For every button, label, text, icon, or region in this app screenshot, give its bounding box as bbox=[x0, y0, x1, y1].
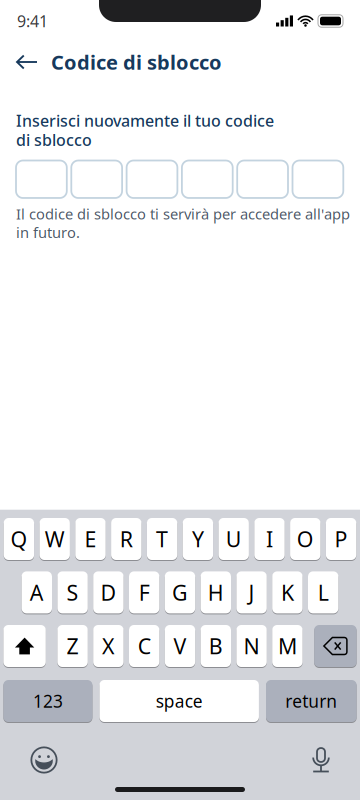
staticText: X bbox=[102, 632, 115, 660]
staticText: W bbox=[45, 525, 65, 553]
staticText: Q bbox=[10, 525, 27, 553]
button[interactable]: B bbox=[201, 625, 231, 668]
staticText: L bbox=[318, 578, 329, 606]
staticText: U bbox=[226, 525, 242, 553]
staticText: 123 bbox=[33, 689, 63, 712]
button[interactable]: return bbox=[266, 680, 357, 723]
button[interactable]: A bbox=[22, 571, 52, 614]
button[interactable]: J bbox=[236, 571, 267, 614]
staticText: C bbox=[138, 632, 151, 660]
button[interactable]: Emoji bbox=[22, 738, 66, 782]
button[interactable]: P bbox=[326, 518, 356, 561]
button[interactable]: F bbox=[129, 571, 159, 614]
staticText: Z bbox=[67, 632, 79, 660]
button[interactable]: Maiuscole bbox=[3, 625, 46, 668]
staticText: G bbox=[172, 578, 188, 606]
button[interactable]: I bbox=[254, 518, 285, 561]
button[interactable]: W bbox=[39, 518, 70, 561]
button[interactable]: L bbox=[308, 571, 338, 614]
staticText: di sblocco bbox=[16, 129, 92, 150]
button[interactable]: N bbox=[236, 625, 267, 668]
staticText: F bbox=[139, 578, 150, 606]
staticText: B bbox=[209, 632, 223, 660]
staticText: D bbox=[100, 578, 116, 606]
button[interactable]: Indietro bbox=[0, 44, 51, 80]
button[interactable]: E bbox=[75, 518, 106, 561]
button[interactable]: S bbox=[57, 571, 88, 614]
button[interactable]: R bbox=[111, 518, 141, 561]
staticText: V bbox=[173, 632, 186, 660]
staticText: R bbox=[120, 525, 133, 553]
button[interactable]: V bbox=[165, 625, 195, 668]
button[interactable]: M bbox=[272, 625, 303, 668]
button[interactable]: space bbox=[99, 680, 259, 723]
button[interactable]: C bbox=[129, 625, 159, 668]
button[interactable]: O bbox=[290, 518, 320, 561]
staticText: return bbox=[285, 689, 337, 712]
staticText: Codice di sblocco bbox=[51, 49, 222, 75]
staticText: S bbox=[67, 578, 79, 606]
staticText: Il codice di sblocco ti servirà per acce… bbox=[16, 204, 350, 223]
button[interactable]: Q bbox=[4, 518, 34, 561]
button[interactable]: K bbox=[272, 571, 303, 614]
staticText: I bbox=[266, 525, 273, 553]
staticText: Y bbox=[192, 525, 204, 553]
staticText: in futuro. bbox=[16, 222, 80, 242]
staticText: H bbox=[208, 578, 224, 606]
button[interactable]: Y bbox=[183, 518, 213, 561]
staticText: T bbox=[156, 525, 168, 553]
staticText: N bbox=[244, 632, 260, 660]
button[interactable]: T bbox=[147, 518, 177, 561]
button[interactable]: U bbox=[218, 518, 249, 561]
staticText: Inserisci nuovamente il tuo codice bbox=[16, 110, 274, 131]
button[interactable]: 123 bbox=[3, 680, 92, 723]
button[interactable]: X bbox=[93, 625, 124, 668]
button[interactable]: H bbox=[201, 571, 231, 614]
staticText: E bbox=[84, 525, 96, 553]
staticText: K bbox=[281, 578, 294, 606]
button[interactable]: D bbox=[93, 571, 124, 614]
button[interactable]: Z bbox=[57, 625, 88, 668]
staticText: space bbox=[156, 689, 203, 712]
staticText: 9:41 bbox=[17, 10, 48, 32]
button[interactable]: G bbox=[165, 571, 195, 614]
staticText: O bbox=[297, 525, 314, 553]
button[interactable]: Cancella bbox=[314, 625, 357, 668]
staticText: P bbox=[335, 525, 348, 553]
staticText: M bbox=[278, 632, 297, 660]
button[interactable]: Dettatura bbox=[299, 738, 343, 782]
staticText: A bbox=[30, 578, 44, 606]
staticText: J bbox=[249, 578, 255, 606]
